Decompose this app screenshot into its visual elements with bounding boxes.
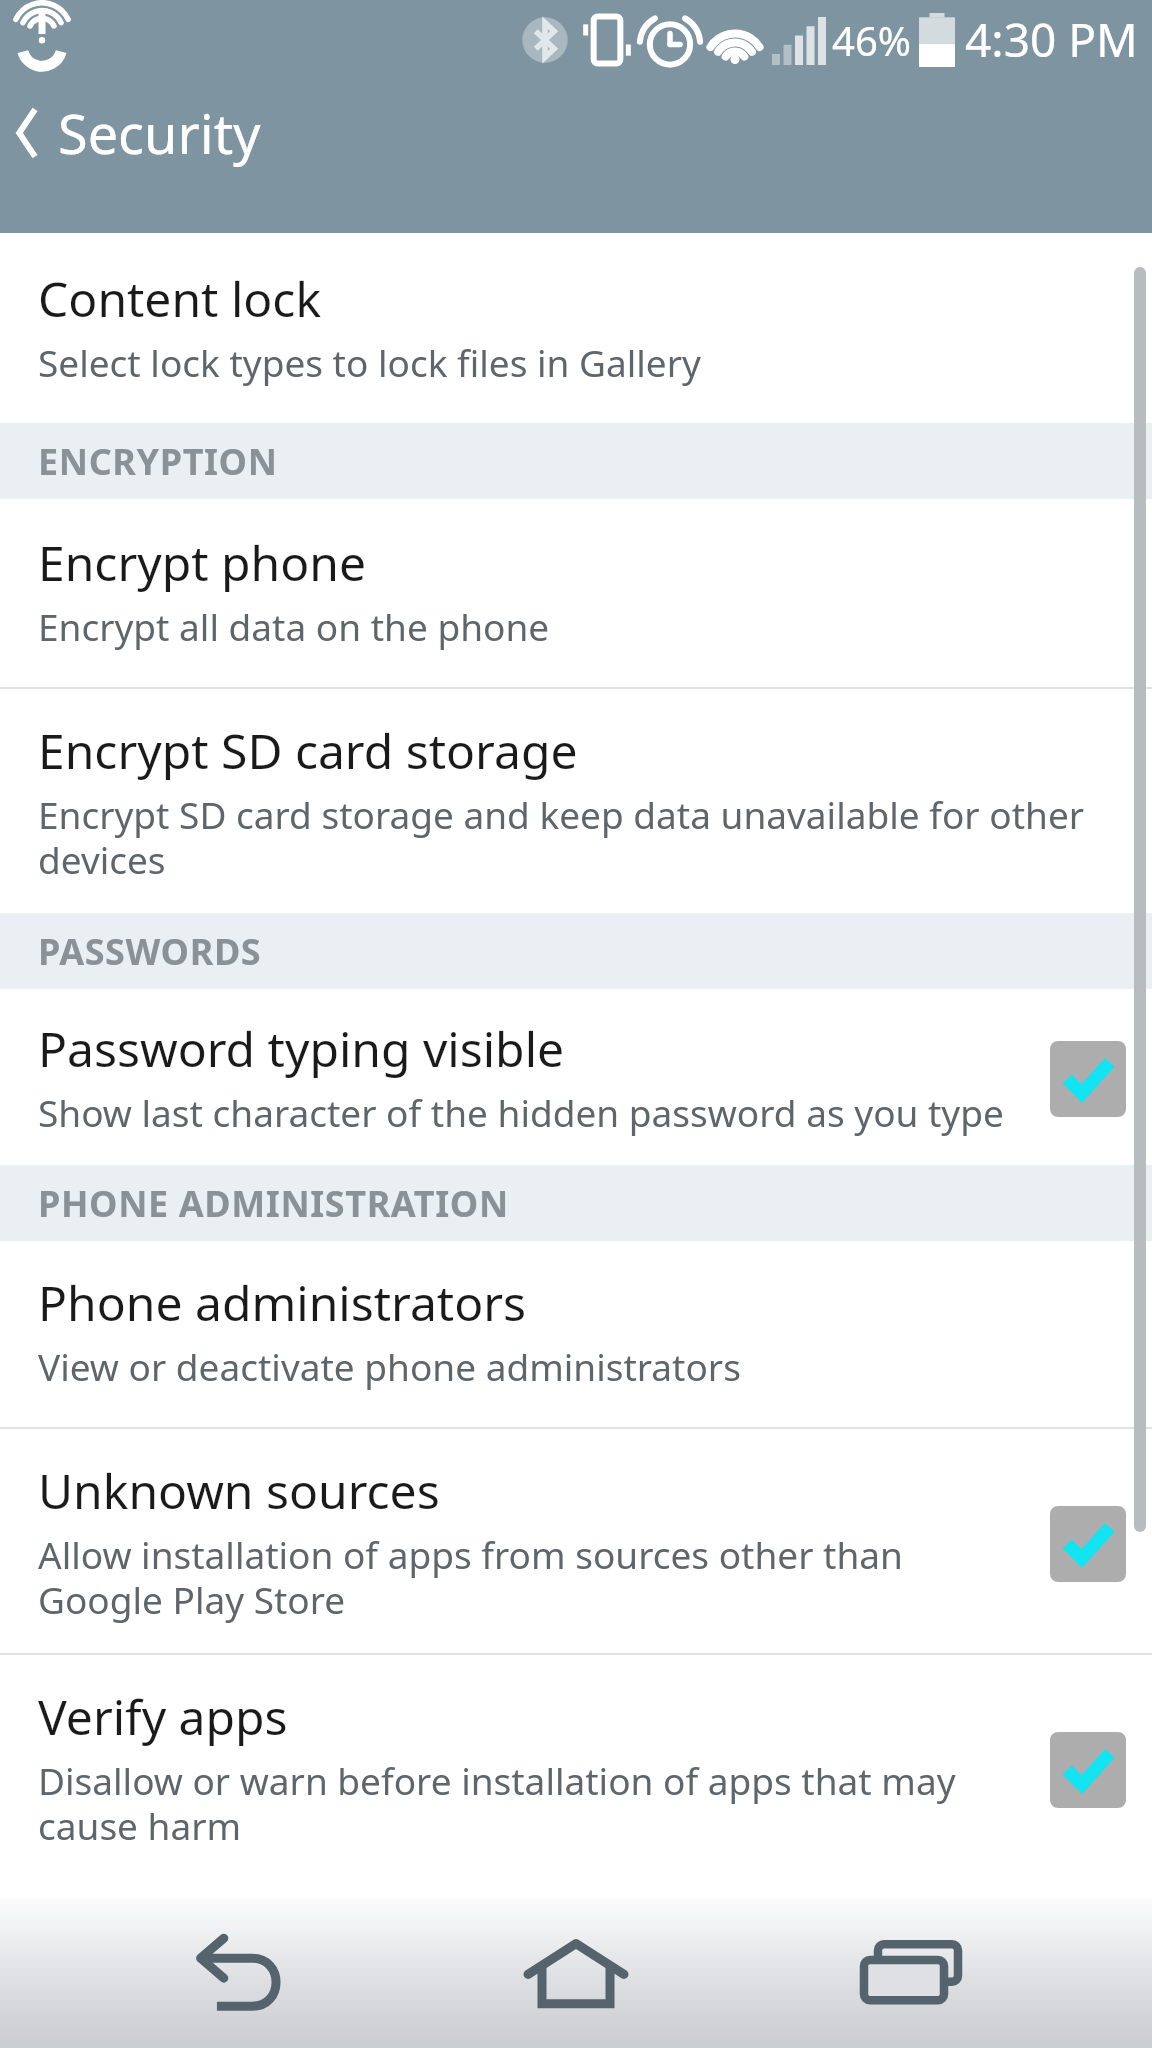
button[interactable]: Content lock [0,233,1152,423]
staticText: Unknown sources [38,1463,440,1521]
staticText: PHONE ADMINISTRATION [38,1179,509,1228]
button[interactable]: Back [146,1898,336,2048]
staticText: Password typing visible [38,1021,565,1079]
staticText: ENCRYPTION [38,437,278,486]
button[interactable]: Home [481,1898,671,2048]
button[interactable]: Password typing visible [0,989,1152,1165]
staticText: Encrypt phone [38,535,366,593]
button[interactable]: Recent apps [817,1898,1007,2048]
staticText: 46% [832,13,911,67]
button[interactable]: Unknown sources [0,1429,1152,1653]
staticText: Content lock [38,271,322,329]
staticText: Allow installation of apps from sources … [38,1529,1030,1625]
staticText: Encrypt SD card storage and keep data un… [38,789,1126,885]
button[interactable]: Toggle setting [1050,1732,1126,1808]
staticText: Disallow or warn before installation of … [38,1755,1030,1851]
staticText: View or deactivate phone administrators [38,1341,741,1391]
button[interactable]: Verify apps [0,1655,1152,1879]
button[interactable]: Encrypt phone [0,499,1152,687]
button[interactable]: Encrypt SD card storage [0,689,1152,913]
staticText: Encrypt SD card storage [38,723,578,781]
staticText: Show last character of the hidden passwo… [38,1087,1004,1137]
button[interactable]: Toggle setting [1050,1041,1126,1117]
staticText: Select lock types to lock files in Galle… [38,337,701,387]
staticText: 4:30 PM [965,8,1138,71]
staticText: Security [58,96,261,170]
staticText: Verify apps [38,1689,288,1747]
button[interactable]: Phone administrators [0,1241,1152,1427]
button[interactable]: Security [0,78,1152,188]
staticText: Encrypt all data on the phone [38,601,550,651]
staticText: PASSWORDS [38,927,262,976]
staticText: Phone administrators [38,1275,527,1333]
button[interactable]: Toggle setting [1050,1506,1126,1582]
